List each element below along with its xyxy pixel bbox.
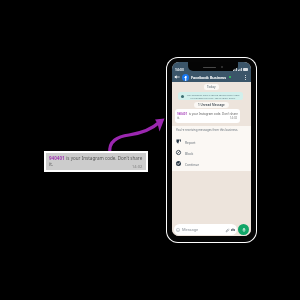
button[interactable]: Message <box>174 224 237 235</box>
staticText: Message <box>182 227 199 232</box>
staticText: You're receiving messages from this busi… <box>176 128 239 132</box>
button[interactable]: Report <box>172 136 251 147</box>
staticText: it. <box>49 161 54 167</box>
staticText: Facebook Business <box>191 75 227 80</box>
staticText: 14:03 <box>175 67 184 72</box>
staticText: Continue <box>185 162 200 166</box>
staticText: 14:02 <box>132 164 143 169</box>
button[interactable]: Block <box>172 147 251 158</box>
button[interactable]: This business uses a secure service from… <box>178 92 243 100</box>
staticText: 1 Unread Message <box>198 103 225 107</box>
staticText: 940401 <box>177 112 188 116</box>
staticText: is your Instagram code. Don't share <box>65 155 143 161</box>
button[interactable]: More options <box>243 73 248 82</box>
staticText: This business uses a secure service from… <box>186 93 240 99</box>
staticText: Report <box>185 140 196 144</box>
staticText: is your Instagram code. Don't share <box>188 112 238 116</box>
button[interactable]: Continue <box>172 158 251 169</box>
staticText: 940401 <box>49 155 65 161</box>
other: Camera <box>231 228 235 232</box>
staticText: it. <box>177 116 180 120</box>
button[interactable]: Voice message <box>238 224 249 235</box>
button[interactable]: Back <box>174 74 180 80</box>
staticText: Block <box>185 151 194 155</box>
other: Attach <box>225 228 229 232</box>
staticText: Today <box>207 85 216 89</box>
staticText: 14:02 <box>230 116 238 120</box>
